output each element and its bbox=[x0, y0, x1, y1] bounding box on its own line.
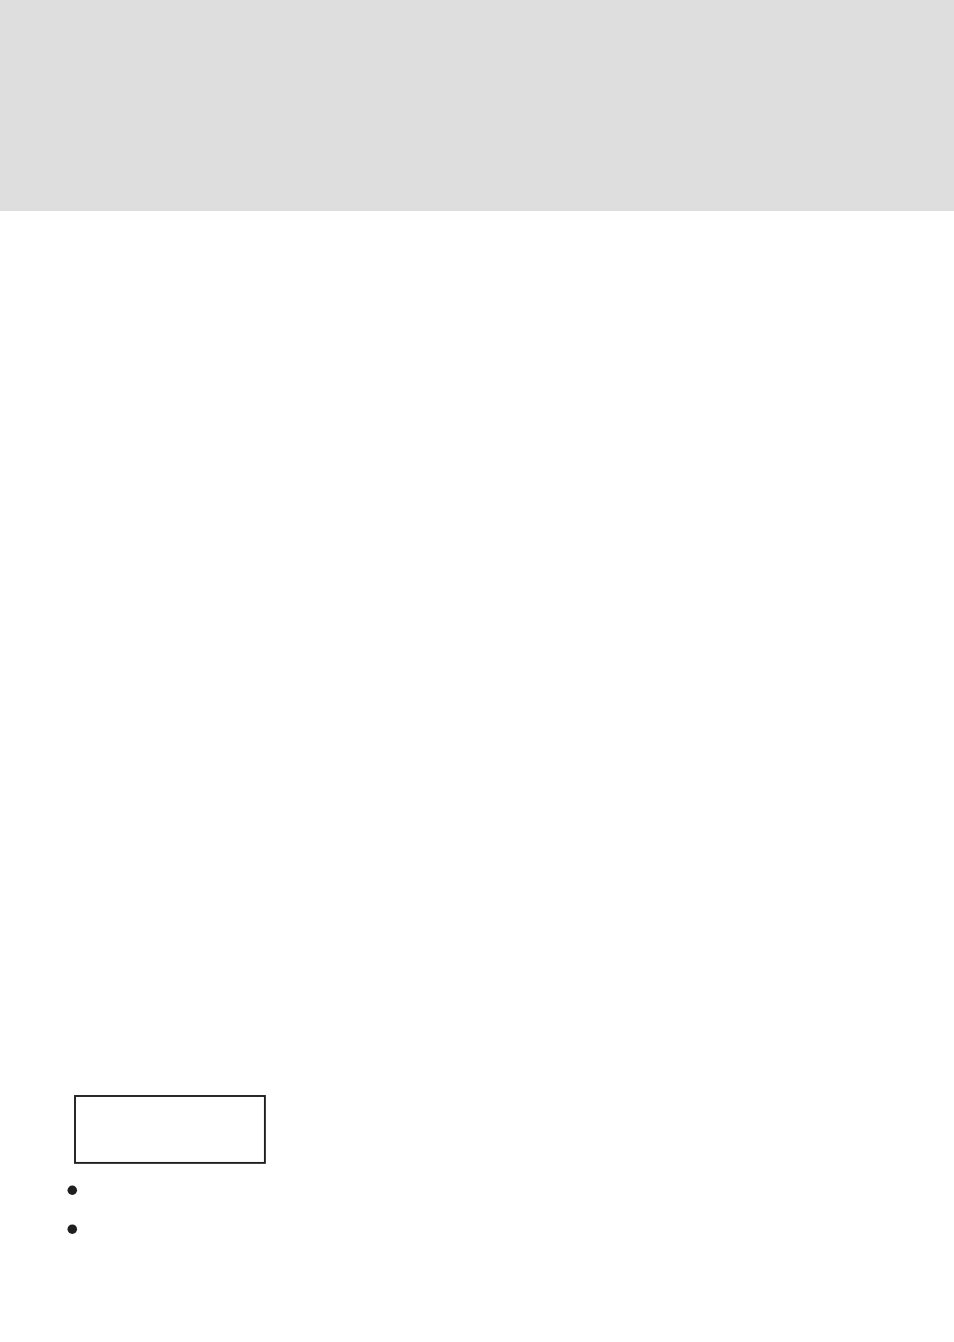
button[interactable]: List item two bbox=[67, 1224, 77, 1234]
button[interactable]: List item one bbox=[67, 1185, 77, 1195]
button[interactable]: Frame bbox=[74, 1095, 265, 1163]
